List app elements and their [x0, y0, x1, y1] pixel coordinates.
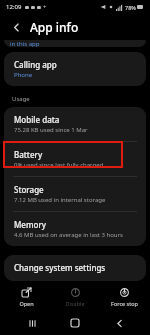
- staticText: Usage: [12, 95, 30, 103]
- button[interactable]: Back: [107, 311, 131, 335]
- button[interactable]: Back: [8, 19, 24, 35]
- button[interactable]: Open: [3, 283, 49, 310]
- staticText: Force stop: [111, 300, 138, 307]
- staticText: 0% used since last fully charged: [14, 161, 104, 169]
- staticText: Open: [19, 300, 34, 307]
- staticText: in this app: [10, 40, 40, 47]
- staticText: Change system settings: [14, 262, 106, 273]
- button[interactable]: Memory: [4, 212, 146, 246]
- staticText: 75.28 KB used since 1 Mar: [14, 126, 88, 134]
- staticText: 78%: [125, 4, 136, 11]
- staticText: 12:09: [6, 3, 22, 11]
- staticText: App info: [30, 19, 79, 35]
- button[interactable]: Force stop: [101, 283, 147, 310]
- staticText: 7.12 MB used in internal storage: [14, 196, 106, 204]
- staticText: Phone: [14, 71, 33, 79]
- staticText: 4.6 MB used on average in last 3 hours: [14, 231, 123, 239]
- staticText: Memory: [14, 219, 47, 230]
- button[interactable]: Home: [63, 311, 87, 335]
- staticText: Calling app: [14, 59, 57, 70]
- button[interactable]: Battery: [4, 142, 146, 176]
- staticText: Mobile data: [14, 114, 60, 125]
- button[interactable]: Disable: [52, 283, 98, 310]
- button[interactable]: Recents: [20, 311, 44, 335]
- staticText: Battery: [14, 149, 43, 160]
- button[interactable]: Calling app: [4, 52, 146, 86]
- staticText: +: [43, 3, 47, 11]
- staticText: Storage: [14, 184, 44, 195]
- staticText: Disable: [65, 300, 85, 307]
- button[interactable]: Storage: [4, 177, 146, 211]
- button[interactable]: Change system settings: [4, 255, 146, 281]
- button[interactable]: Mobile data: [4, 107, 146, 141]
